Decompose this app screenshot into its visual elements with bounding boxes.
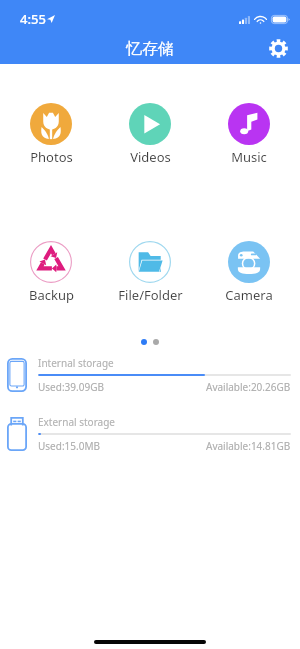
- button[interactable]: File/Folder: [102, 241, 198, 304]
- button[interactable]: Settings: [265, 35, 291, 61]
- staticText: File/Folder: [118, 286, 183, 304]
- staticText: 4:55: [20, 10, 46, 28]
- button[interactable]: Backup: [3, 241, 99, 304]
- staticText: Available:14.81GB: [206, 439, 291, 453]
- staticText: Used:15.0MB: [38, 439, 100, 453]
- staticText: External storage: [38, 415, 115, 429]
- button[interactable]: External storage: [7, 414, 291, 454]
- staticText: Camera: [225, 286, 273, 304]
- staticText: Music: [231, 148, 267, 166]
- button[interactable]: Internal storage: [7, 355, 291, 395]
- button[interactable]: Music: [201, 103, 297, 166]
- staticText: Videos: [130, 148, 171, 166]
- staticText: Photos: [30, 148, 73, 166]
- staticText: 忆存储: [126, 39, 174, 59]
- button[interactable]: Videos: [102, 103, 198, 166]
- staticText: Backup: [29, 286, 74, 304]
- staticText: Internal storage: [38, 356, 114, 370]
- button[interactable]: Camera: [201, 241, 297, 304]
- button[interactable]: Photos: [3, 103, 99, 166]
- staticText: Available:20.26GB: [206, 380, 291, 394]
- staticText: Used:39.09GB: [38, 380, 104, 394]
